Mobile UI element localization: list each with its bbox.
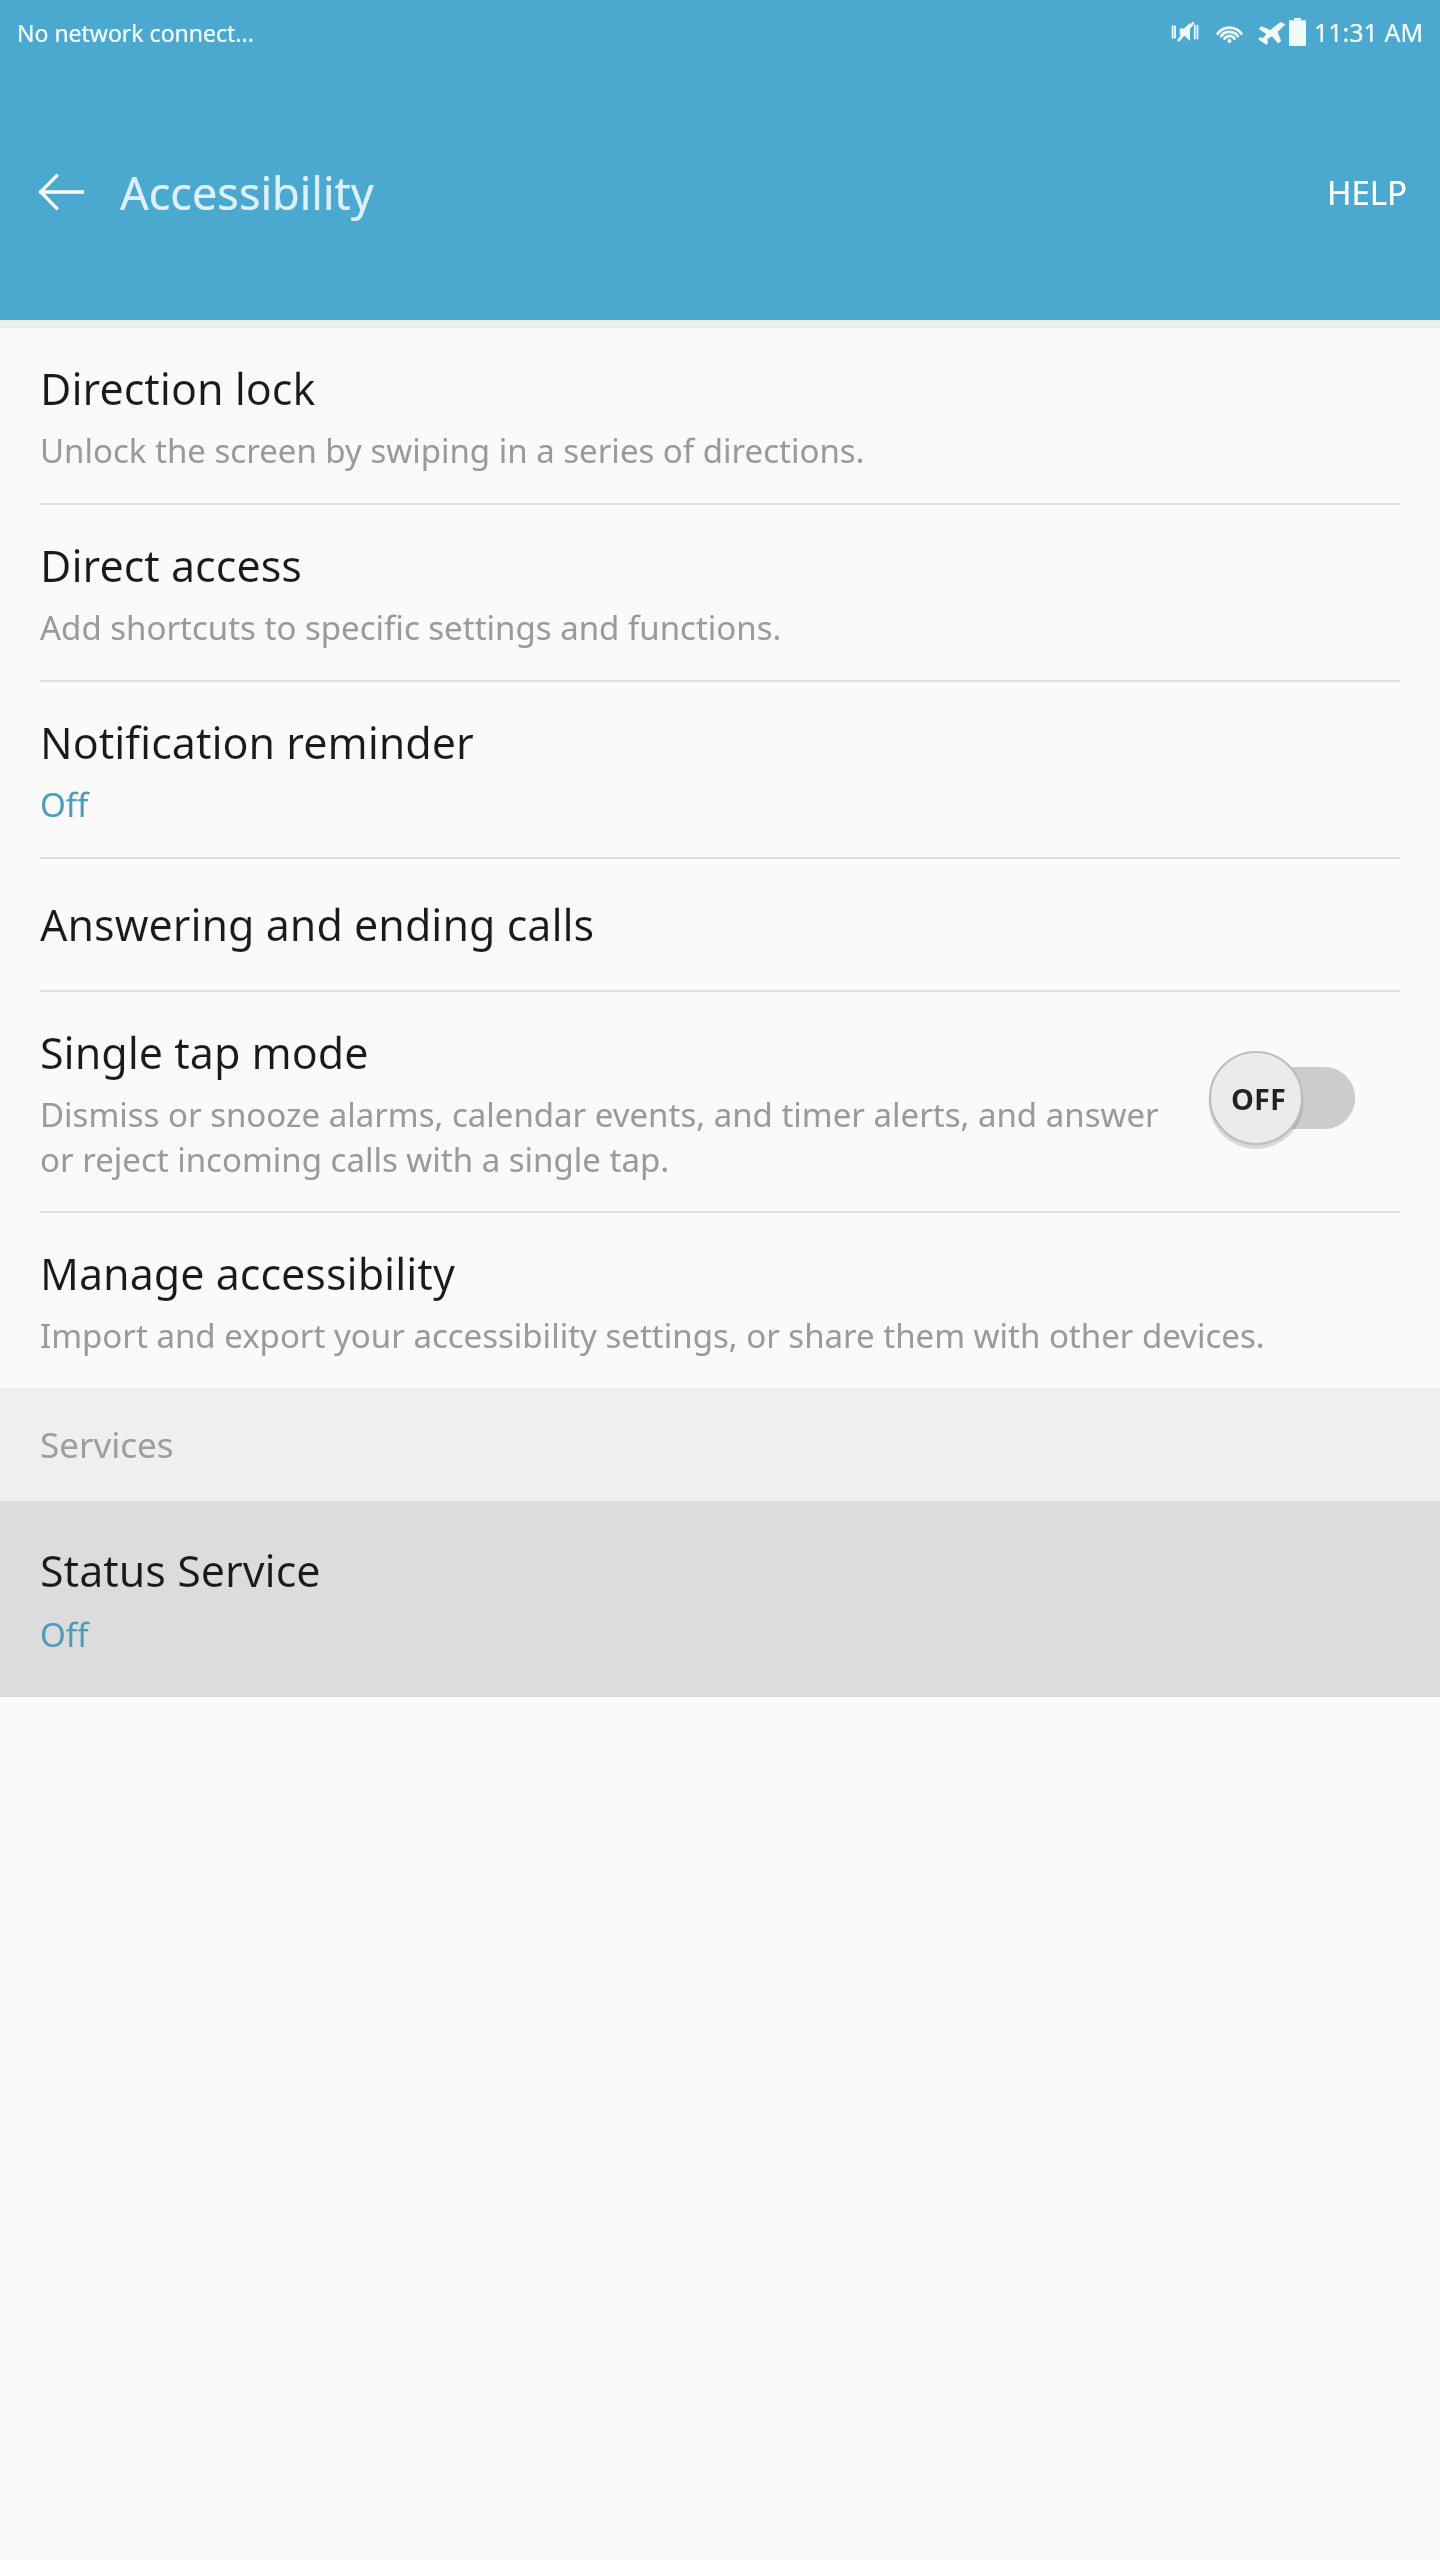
button[interactable]: Answering and ending calls <box>0 859 1440 990</box>
staticText: Services <box>40 1421 174 1469</box>
staticText: Off <box>40 782 89 827</box>
staticText: Answering and ending calls <box>40 895 595 954</box>
staticText: Direction lock <box>40 359 316 418</box>
staticText: Unlock the screen by swiping in a series… <box>40 428 865 473</box>
button[interactable]: Back <box>26 157 96 227</box>
button[interactable]: Notification reminder <box>0 682 1440 857</box>
button[interactable]: Status Service <box>0 1501 1440 1697</box>
staticText: Off <box>40 1612 89 1657</box>
staticText: OFF <box>1231 1079 1286 1118</box>
staticText: Direct access <box>40 536 302 595</box>
button[interactable]: Direct access <box>0 505 1440 680</box>
staticText: Single tap mode <box>40 1023 369 1082</box>
staticText: Accessibility <box>120 162 374 223</box>
staticText: Import and export your accessibility set… <box>40 1313 1265 1358</box>
button[interactable]: Single tap mode toggle, off <box>1208 1045 1378 1151</box>
button[interactable]: HELP <box>1309 156 1426 229</box>
staticText: Add shortcuts to specific settings and f… <box>40 605 782 650</box>
staticText: Manage accessibility <box>40 1244 455 1303</box>
button[interactable]: Manage accessibility <box>0 1213 1440 1388</box>
button[interactable]: Direction lock <box>0 328 1440 503</box>
staticText: Status Service <box>40 1541 321 1600</box>
staticText: 11:31 AM <box>1314 15 1424 49</box>
staticText: No network connect... <box>17 17 254 48</box>
button[interactable]: Single tap mode <box>0 992 1440 1211</box>
staticText: Dismiss or snooze alarms, calendar event… <box>40 1092 1190 1181</box>
staticText: HELP <box>1327 170 1408 215</box>
staticText: Notification reminder <box>40 713 474 772</box>
